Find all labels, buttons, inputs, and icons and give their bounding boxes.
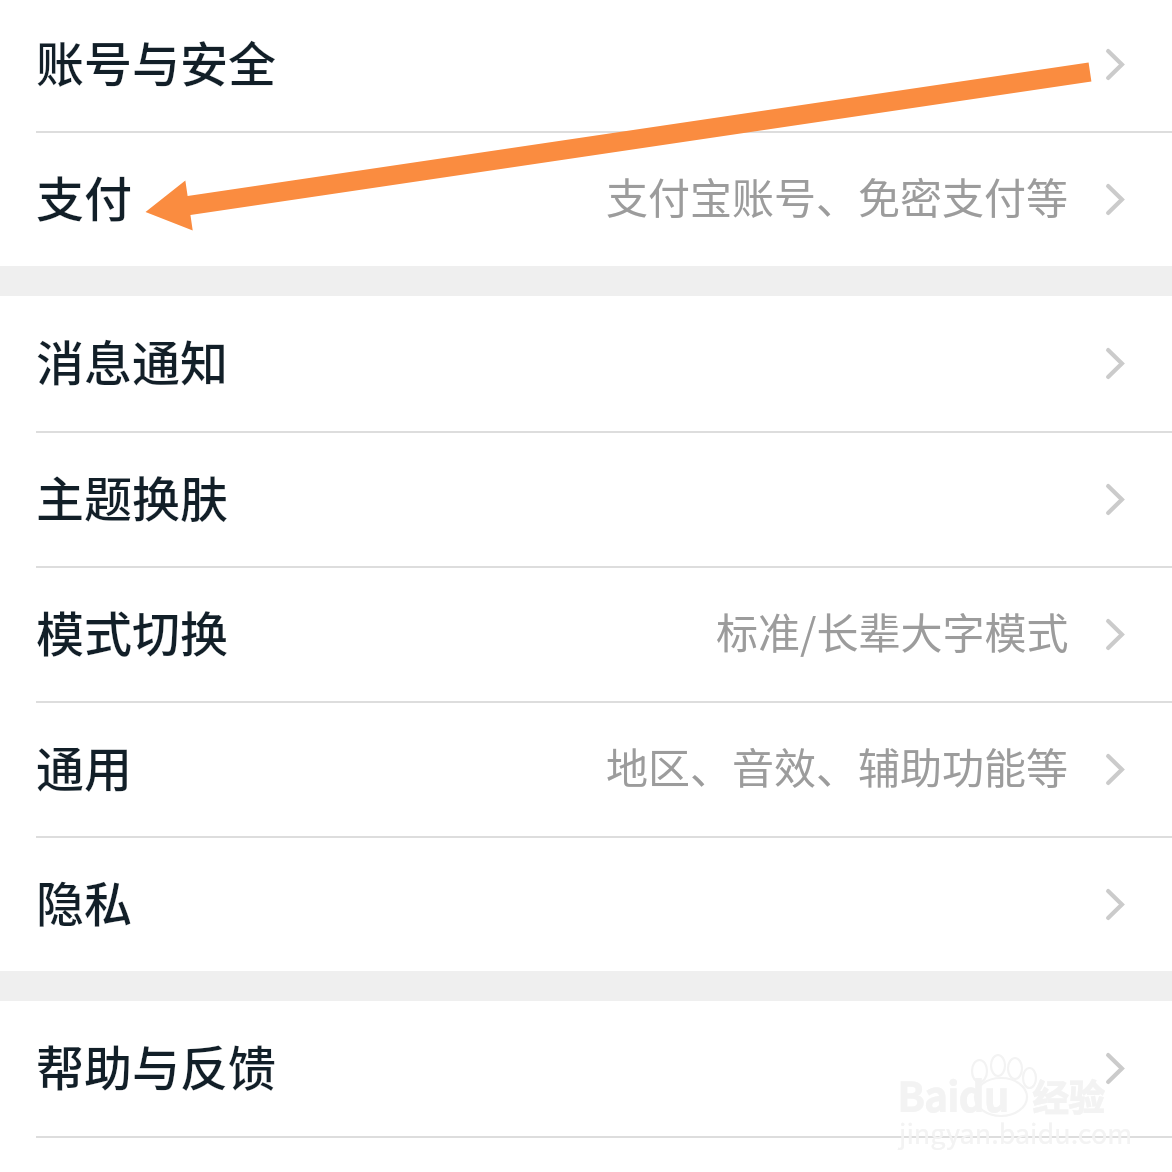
staticText: 账号与安全 [36, 26, 277, 96]
staticText: 主题换肤 [36, 461, 229, 531]
button[interactable]: 主题换肤 [0, 433, 1172, 566]
staticText: 隐私 [36, 866, 133, 936]
staticText: 消息通知 [36, 325, 229, 395]
staticText: 标准/长辈大字模式 [716, 600, 1069, 661]
other: Open [1106, 49, 1124, 80]
other: Open [1106, 184, 1124, 215]
button[interactable]: 模式切换 [0, 568, 1172, 701]
staticText: 通用 [36, 731, 133, 801]
staticText: 支付宝账号、免密支付等 [606, 165, 1069, 226]
staticText: Baidu [897, 1066, 1009, 1124]
button[interactable]: 通用 [0, 703, 1172, 836]
staticText: 帮助与反馈 [36, 1030, 277, 1100]
other: Open [1106, 1053, 1124, 1084]
button[interactable]: 隐私 [0, 838, 1172, 971]
other: Open [1106, 889, 1124, 920]
staticText: 经验 [1032, 1070, 1105, 1122]
other: Open [1106, 754, 1124, 785]
other: Open [1106, 484, 1124, 515]
button[interactable]: 帮助与反馈 [0, 1001, 1172, 1136]
other: Open [1106, 619, 1124, 650]
staticText: 地区、音效、辅助功能等 [606, 735, 1069, 796]
staticText: jingyan.baidu.com [899, 1113, 1133, 1152]
button[interactable]: 账号与安全 [0, 0, 1172, 131]
other: Open [1106, 348, 1124, 379]
staticText: 模式切换 [36, 596, 229, 666]
staticText: 支付 [36, 161, 133, 231]
button[interactable]: 支付 [0, 133, 1172, 266]
button[interactable]: 消息通知 [0, 296, 1172, 431]
